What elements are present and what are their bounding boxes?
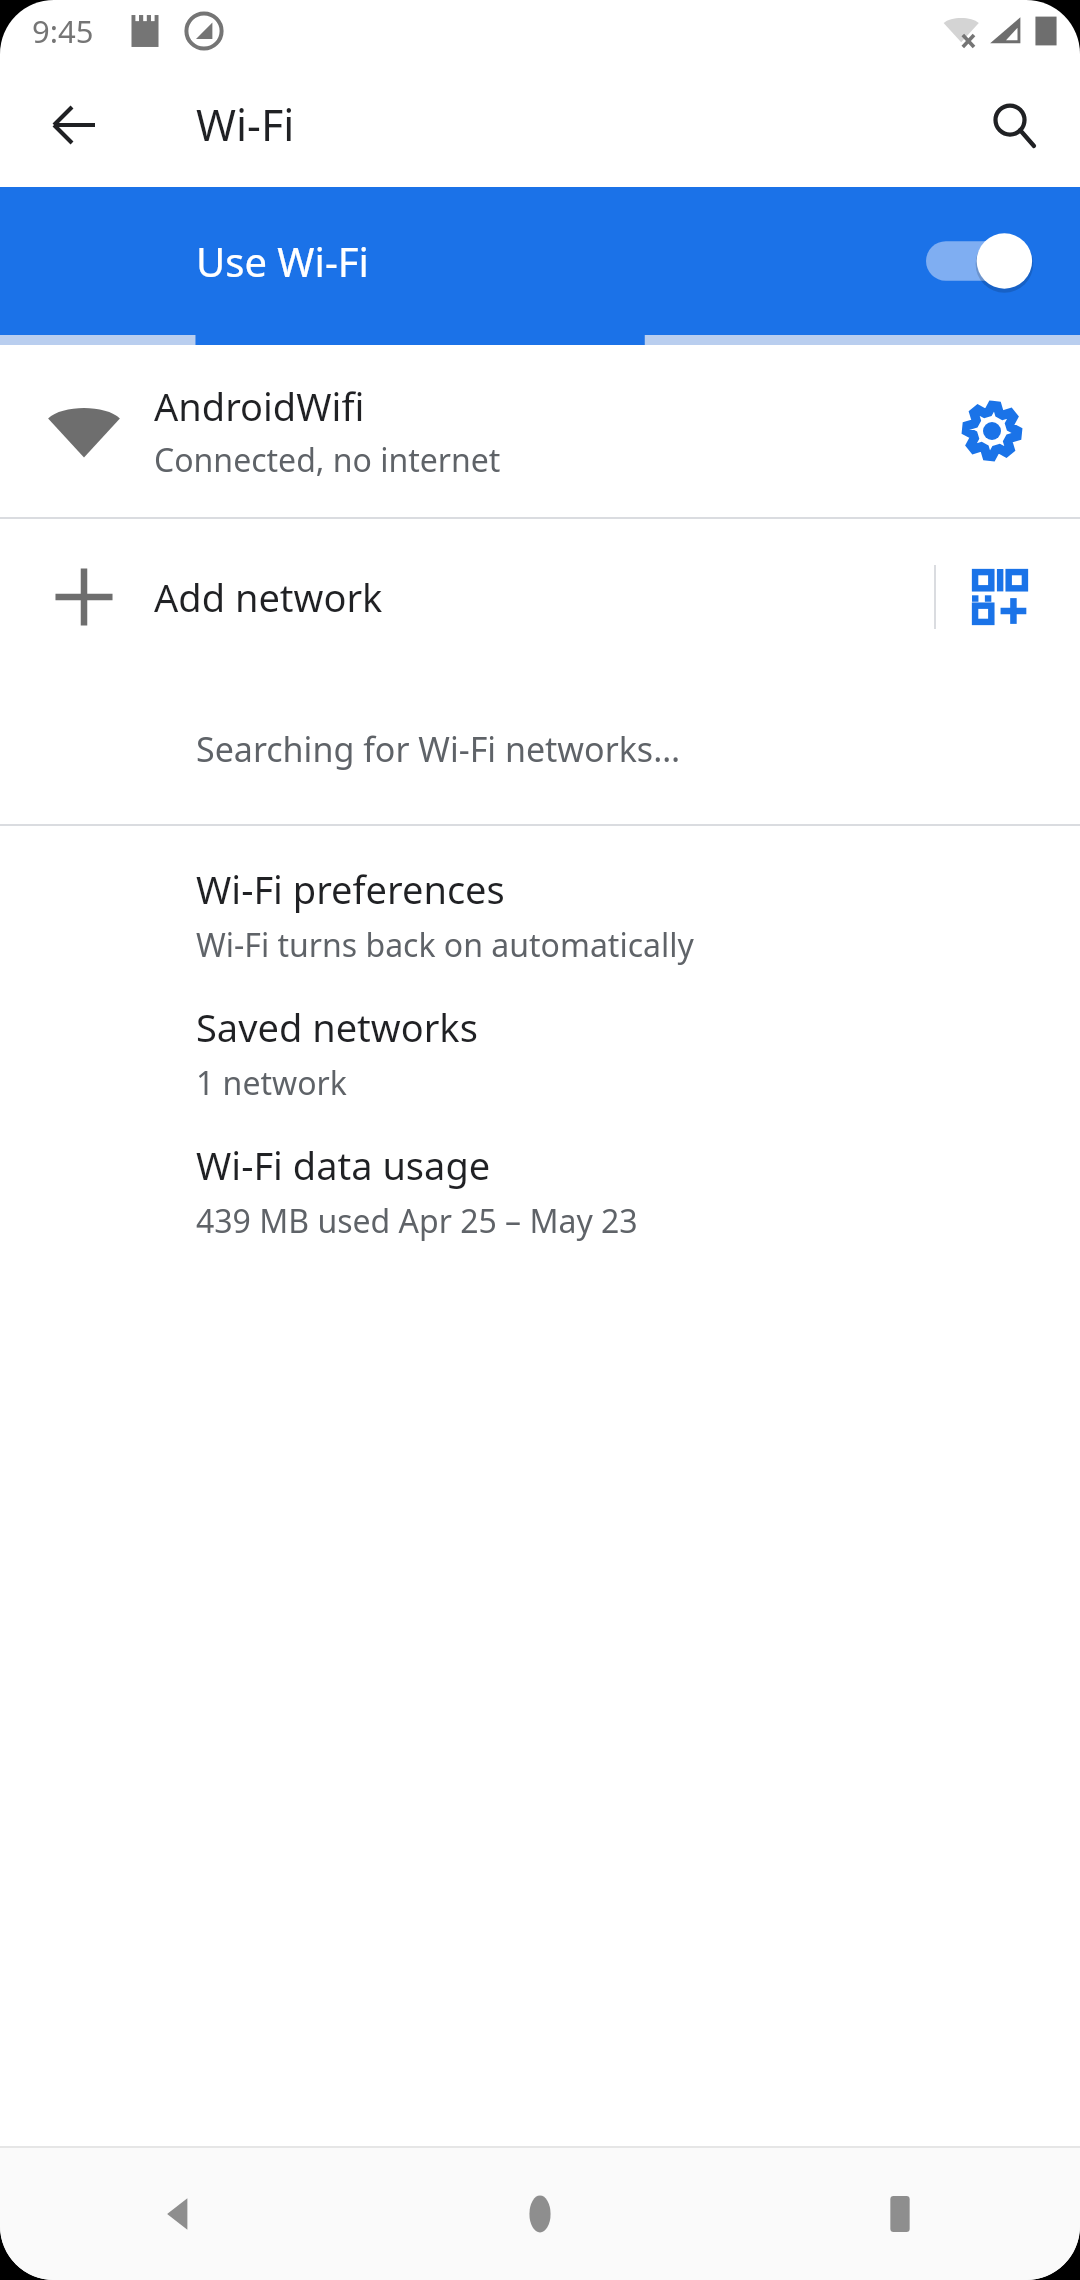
button[interactable]: Search <box>966 77 1062 173</box>
button[interactable]: Back <box>0 2148 360 2280</box>
staticText: Wi-Fi <box>196 95 295 154</box>
staticText: Wi-Fi data usage <box>196 1139 491 1191</box>
button[interactable]: Wi-Fi data usage <box>0 1122 1080 1260</box>
button[interactable]: Saved networks <box>0 984 1080 1122</box>
button[interactable]: Add network <box>0 519 1080 674</box>
staticText: 1 network <box>196 1061 347 1105</box>
button[interactable]: Use Wi-Fi <box>0 187 1080 335</box>
button[interactable]: Network details settings <box>946 385 1038 477</box>
staticText: Wi-Fi preferences <box>196 863 505 915</box>
button[interactable]: Home <box>360 2148 720 2280</box>
staticText: Searching for Wi-Fi networks… <box>196 726 681 772</box>
button[interactable]: Navigate up <box>26 77 122 173</box>
staticText: Use Wi-Fi <box>196 234 369 288</box>
staticText: 439 MB used Apr 25 – May 23 <box>196 1199 638 1243</box>
button[interactable]: Wi-Fi preferences <box>0 846 1080 984</box>
staticText: Saved networks <box>196 1001 478 1053</box>
staticText: Add network <box>154 571 383 623</box>
button[interactable]: AndroidWifi <box>0 345 1080 517</box>
staticText: Wi-Fi turns back on automatically <box>196 923 694 967</box>
staticText: Connected, no internet <box>154 438 501 482</box>
button[interactable]: Scan QR code to add network <box>954 551 1046 643</box>
staticText: AndroidWifi <box>154 380 365 432</box>
button[interactable]: Recent apps <box>720 2148 1080 2280</box>
staticText: 9:45 <box>32 10 94 52</box>
